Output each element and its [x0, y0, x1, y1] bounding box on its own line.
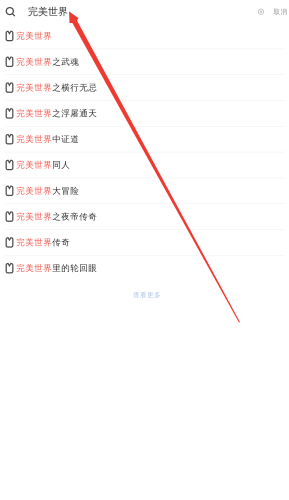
button[interactable]: 完美世界	[0, 101, 289, 126]
staticText: 查看更多	[133, 291, 161, 299]
button[interactable]: 完美世界	[0, 75, 289, 100]
staticText: 完美世界	[16, 31, 52, 41]
button[interactable]: 完美世界	[0, 127, 289, 152]
staticText: 完美世界	[16, 56, 52, 67]
button[interactable]: 完美世界	[0, 49, 289, 74]
staticText: 传奇	[52, 237, 70, 248]
button[interactable]: 完美世界	[0, 152, 289, 178]
button[interactable]: 完美世界	[0, 23, 289, 49]
button[interactable]: 取消	[269, 7, 289, 16]
staticText: 之浮屠通天	[52, 108, 97, 119]
button[interactable]: 完美世界	[0, 178, 289, 203]
staticText: 完美世界	[16, 185, 52, 196]
button[interactable]: 完美世界	[0, 230, 289, 255]
staticText: 之夜帝传奇	[52, 211, 97, 222]
button[interactable]: 完美世界	[0, 256, 289, 281]
staticText: 完美世界	[16, 160, 52, 170]
button[interactable]: 查看更多	[0, 281, 289, 299]
staticText: 大冒险	[52, 185, 79, 196]
button[interactable]: 完美世界	[0, 204, 289, 229]
staticText: 完美世界	[16, 134, 52, 145]
staticText: 之武魂	[52, 56, 79, 67]
staticText: 里的轮回眼	[52, 263, 97, 274]
staticText: 完美世界	[16, 108, 52, 119]
staticText: 中证道	[52, 134, 79, 145]
staticText: 完美世界	[16, 263, 52, 274]
staticText: 完美世界	[16, 82, 52, 93]
staticText: 之横行无忌	[52, 82, 97, 93]
staticText: 同人	[52, 160, 70, 170]
staticText: 取消	[273, 7, 287, 16]
staticText: 完美世界	[16, 237, 52, 248]
staticText: 完美世界	[16, 211, 52, 222]
staticText: 完美世界	[28, 5, 68, 18]
button[interactable]: Clear search text	[254, 5, 269, 19]
